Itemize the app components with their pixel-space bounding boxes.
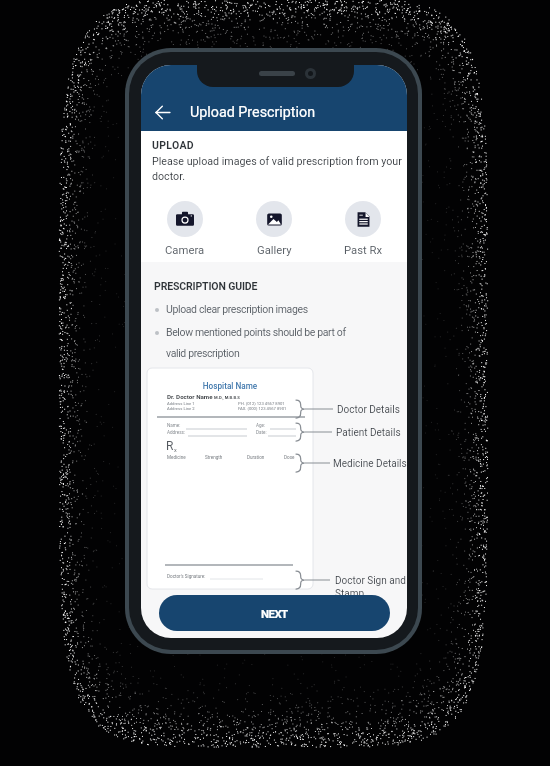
staticText: Address Line 1 Address Line 2	[167, 401, 195, 411]
staticText: Strength	[205, 455, 223, 460]
staticText: Age:	[256, 423, 266, 428]
button[interactable]: NEXT	[159, 595, 390, 631]
button[interactable]: Back	[148, 97, 178, 127]
staticText: Upload clear prescription images	[166, 303, 308, 315]
button[interactable]: Gallery	[239, 201, 309, 257]
staticText: NEXT	[261, 607, 288, 620]
staticText: PH. (012) 123 4567 8901 FAX. (000) 123 4…	[238, 401, 287, 411]
staticText: Camera	[165, 244, 205, 257]
button[interactable]: Camera	[150, 201, 220, 257]
staticText: Date:	[256, 430, 267, 435]
staticText: Past Rx	[344, 244, 383, 257]
staticText: Address:	[167, 430, 185, 435]
staticText: Doctor's Signature:	[167, 574, 206, 579]
staticText: Dr. Doctor Name	[167, 393, 213, 400]
staticText: Gallery	[257, 244, 292, 257]
staticText: Doctor Sign and Stamp	[335, 575, 407, 599]
staticText: Duration	[247, 455, 265, 460]
staticText: Medicine	[167, 455, 186, 460]
staticText: PRESCRIPTION GUIDE	[154, 280, 258, 292]
staticText: Below mentioned points should be part of…	[166, 326, 352, 359]
staticText: UPLOAD	[152, 139, 194, 151]
staticText: Name:	[167, 423, 181, 428]
staticText: R	[166, 439, 174, 453]
staticText: Upload Prescription	[190, 104, 316, 121]
staticText: Medicine Details	[333, 458, 407, 470]
button[interactable]: Past Rx	[328, 201, 398, 257]
staticText: Hospital Name	[147, 381, 313, 391]
staticText: Dose	[284, 455, 295, 460]
staticText: Please upload images of valid prescripti…	[152, 155, 404, 182]
staticText: M.D., M.B.B.S	[213, 395, 240, 400]
staticText: x	[174, 447, 177, 453]
staticText: Patient Details	[336, 427, 401, 439]
staticText: Doctor Details	[337, 404, 400, 416]
